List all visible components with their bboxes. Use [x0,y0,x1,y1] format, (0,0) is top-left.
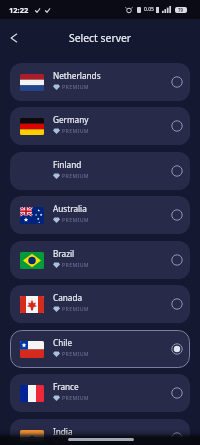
staticText: PREMIUM [62,216,89,223]
button[interactable]: Netherlands [10,63,190,101]
staticText: Finland [53,159,82,170]
staticText: PREMIUM [62,439,89,445]
staticText: France [53,381,79,392]
staticText: PREMIUM [62,394,89,401]
button[interactable]: India [10,419,190,445]
button[interactable]: Chile [10,330,190,368]
button[interactable]: Canada [10,285,190,323]
staticText: Chile [53,337,73,348]
staticText: India [53,426,73,437]
staticText: PREMIUM [62,350,89,357]
staticText: 12:22 [9,5,29,15]
staticText: 0.05 [144,6,154,13]
button[interactable]: Back [3,27,25,49]
staticText: Brazil [53,248,75,259]
staticText: Germany [53,114,89,125]
staticText: PREMIUM [62,172,89,179]
staticText: Select server [69,31,132,45]
staticText: PREMIUM [62,127,89,134]
button[interactable]: France [10,374,190,412]
staticText: Netherlands [53,70,101,81]
staticText: 79 [178,7,184,13]
staticText: Canada [53,292,83,303]
button[interactable]: Germany [10,107,190,145]
staticText: PREMIUM [62,305,89,312]
staticText: PREMIUM [62,261,89,268]
button[interactable]: Brazil [10,241,190,279]
button[interactable]: Finland [10,152,190,190]
button[interactable]: Australia [10,196,190,234]
staticText: Australia [53,203,87,214]
staticText: PREMIUM [62,83,89,90]
